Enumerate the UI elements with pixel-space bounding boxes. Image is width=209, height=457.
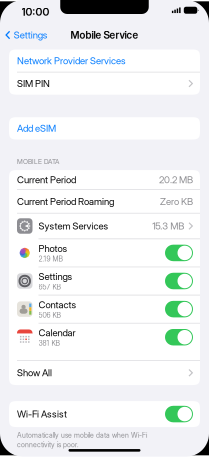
- staticText: Add eSIM: [17, 122, 56, 134]
- button[interactable]: System Services: [9, 213, 200, 239]
- button[interactable]: SIM PIN: [9, 72, 200, 95]
- staticText: Settings: [14, 29, 48, 41]
- staticText: Contacts: [38, 299, 76, 310]
- staticText: Show All: [17, 367, 52, 379]
- button[interactable]: Calendar: [9, 323, 200, 360]
- staticText: connectivity is poor.: [17, 441, 79, 449]
- button[interactable]: Current Period: [9, 170, 200, 189]
- staticText: Current Period Roaming: [17, 196, 114, 207]
- staticText: System Services: [38, 220, 108, 232]
- staticText: Zero KB: [160, 196, 193, 207]
- button[interactable]: Show All: [9, 361, 200, 385]
- button[interactable]: Settings: [0, 26, 48, 44]
- button[interactable]: Network Provider Services: [9, 49, 200, 72]
- staticText: Photos: [38, 243, 67, 254]
- staticText: Mobile Service: [70, 29, 138, 41]
- staticText: 10:00: [21, 5, 49, 18]
- staticText: Network Provider Services: [17, 55, 126, 66]
- staticText: Current Period: [17, 174, 76, 185]
- staticText: 381 KB: [38, 339, 59, 347]
- staticText: 2.19 MB: [38, 255, 62, 263]
- staticText: MOBILE DATA: [17, 157, 59, 166]
- button[interactable]: Add eSIM: [9, 117, 200, 139]
- staticText: Calendar: [38, 327, 75, 339]
- button[interactable]: Current Period Roaming: [9, 190, 200, 213]
- button[interactable]: Settings: [9, 267, 200, 295]
- staticText: 15.3 MB: [152, 220, 184, 232]
- staticText: 20.2 MB: [159, 174, 193, 185]
- staticText: 657 KB: [38, 283, 60, 291]
- staticText: SIM PIN: [17, 78, 50, 89]
- button[interactable]: Photos: [9, 239, 200, 267]
- button[interactable]: Contacts: [9, 295, 200, 323]
- staticText: Settings: [38, 271, 72, 282]
- staticText: Automatically use mobile data when Wi-Fi: [17, 431, 147, 439]
- staticText: Wi-Fi Assist: [17, 408, 67, 420]
- button[interactable]: Wi-Fi Assist: [9, 401, 200, 427]
- staticText: 506 KB: [38, 311, 60, 319]
